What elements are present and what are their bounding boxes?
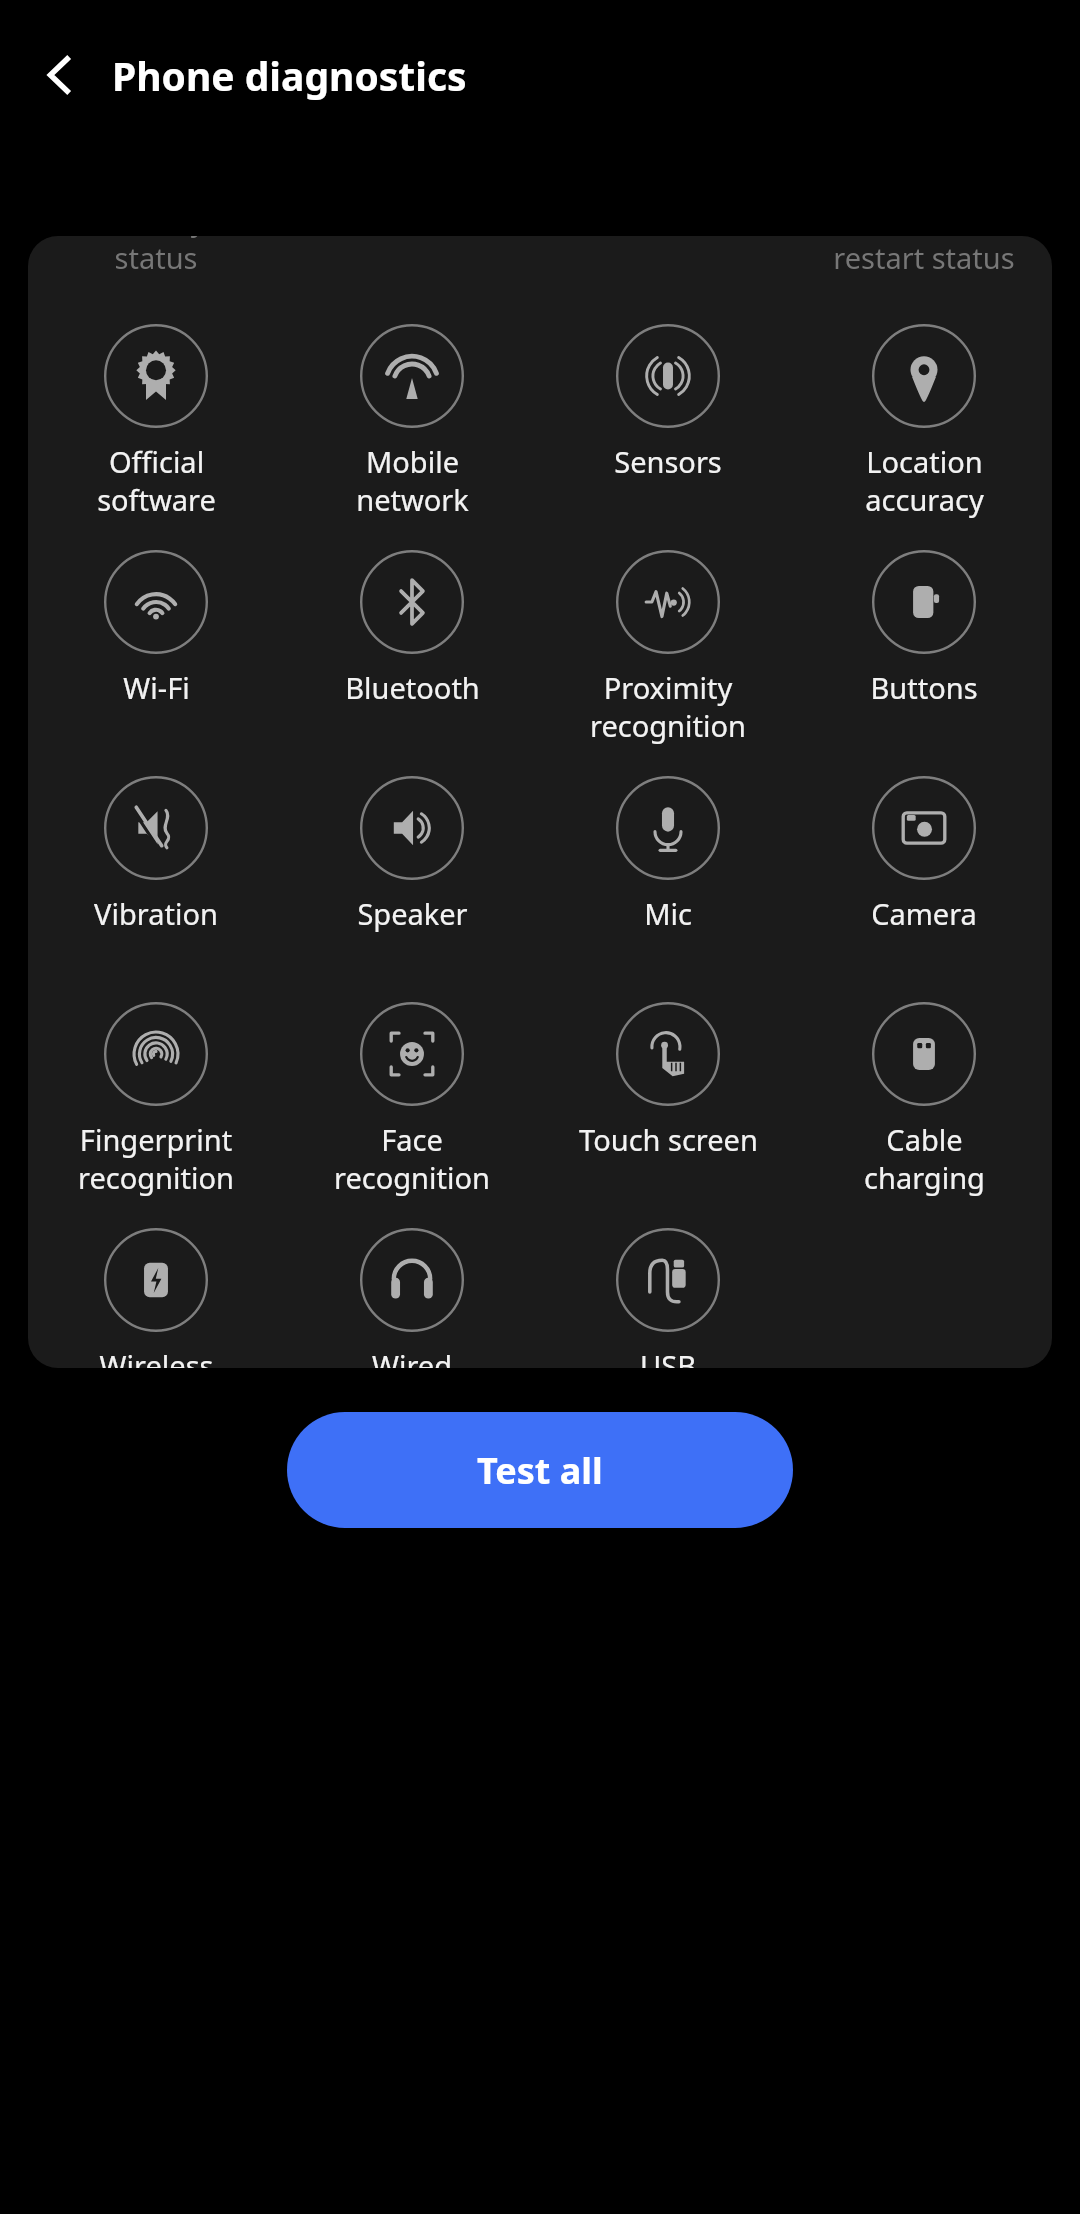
staticText: Location accuracy [865, 442, 984, 519]
button[interactable]: Back [22, 37, 98, 113]
staticText: Cable charging [864, 1120, 985, 1197]
button[interactable]: Cable charging [796, 990, 1052, 1216]
button[interactable]: Buttons [796, 538, 1052, 764]
staticText: Test all [477, 1446, 603, 1495]
button[interactable]: Mic [540, 764, 796, 990]
staticText: Power restart status [833, 236, 1015, 276]
staticText: Wireless charging [96, 1346, 217, 1368]
button[interactable]: Speaker [284, 764, 540, 990]
staticText: Wi-Fi [123, 668, 190, 707]
button[interactable]: Touch screen [540, 990, 796, 1216]
staticText: Wired headphones [327, 1346, 497, 1368]
button[interactable]: Proximity recognition [540, 538, 796, 764]
button[interactable]: Face recognition [284, 990, 540, 1216]
button[interactable]: Test all [287, 1412, 793, 1528]
button[interactable]: Camera [796, 764, 1052, 990]
button[interactable]: Fingerprint recognition [28, 990, 284, 1216]
button[interactable]: Wireless charging [28, 1216, 284, 1368]
button[interactable]: Location accuracy [796, 312, 1052, 538]
staticText: Camera [871, 894, 977, 933]
button[interactable]: Vibration [28, 764, 284, 990]
staticText: Touch screen [579, 1120, 758, 1159]
staticText: Phone diagnostics [112, 49, 467, 102]
button[interactable]: Wired headphones [284, 1216, 540, 1368]
staticText: Vibration [94, 894, 218, 933]
staticText: Battery status [106, 236, 206, 276]
staticText: Mobile network [356, 442, 469, 519]
button[interactable]: Bluetooth [284, 538, 540, 764]
staticText: Fingerprint recognition [78, 1120, 234, 1197]
staticText: Official software [97, 442, 216, 519]
button[interactable]: Wi-Fi [28, 538, 284, 764]
button[interactable]: USB connection [540, 1216, 796, 1368]
staticText: Proximity recognition [590, 668, 746, 745]
staticText: Buttons [870, 668, 978, 707]
button[interactable]: Official software [28, 312, 284, 538]
staticText: Bluetooth [345, 668, 480, 707]
staticText: Sensors [614, 442, 722, 481]
staticText: USB connection [592, 1346, 744, 1368]
button[interactable]: Sensors [540, 312, 796, 538]
staticText: Speaker [357, 894, 468, 933]
button[interactable]: Mobile network [284, 312, 540, 538]
staticText: Mic [644, 894, 692, 933]
staticText: Face recognition [334, 1120, 490, 1197]
